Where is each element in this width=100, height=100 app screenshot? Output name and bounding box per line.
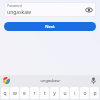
button[interactable]: Next bbox=[4, 22, 96, 31]
staticText: ungaskaw bbox=[40, 78, 60, 83]
button[interactable]: ungaskaw bbox=[40, 78, 60, 83]
button[interactable]: r bbox=[30, 87, 39, 99]
button[interactable]: y bbox=[50, 87, 59, 99]
button[interactable]: u bbox=[60, 87, 69, 99]
button[interactable]: w bbox=[10, 87, 19, 99]
staticText: o bbox=[83, 90, 87, 97]
button[interactable]: q bbox=[1, 87, 9, 99]
button[interactable]: e bbox=[20, 87, 29, 99]
staticText: Password bbox=[7, 4, 22, 8]
staticText: y bbox=[53, 90, 56, 97]
button[interactable]: Google search bbox=[2, 76, 11, 85]
button[interactable]: i bbox=[70, 87, 79, 99]
button[interactable]: o bbox=[80, 87, 89, 99]
staticText: Next bbox=[45, 24, 55, 30]
button[interactable]: Show password bbox=[84, 5, 93, 14]
staticText: t bbox=[44, 90, 46, 97]
staticText: ungaskaw bbox=[7, 9, 31, 16]
staticText: i bbox=[74, 90, 76, 97]
staticText: u bbox=[63, 90, 67, 97]
staticText: r bbox=[33, 90, 36, 97]
button[interactable]: Voice input bbox=[89, 76, 98, 85]
staticText: e bbox=[23, 90, 26, 97]
staticText: q bbox=[3, 90, 7, 97]
staticText: w bbox=[13, 90, 17, 97]
button[interactable]: p bbox=[90, 87, 99, 99]
button[interactable]: t bbox=[40, 87, 49, 99]
button[interactable]: Password bbox=[4, 2, 96, 17]
staticText: p bbox=[93, 90, 97, 97]
